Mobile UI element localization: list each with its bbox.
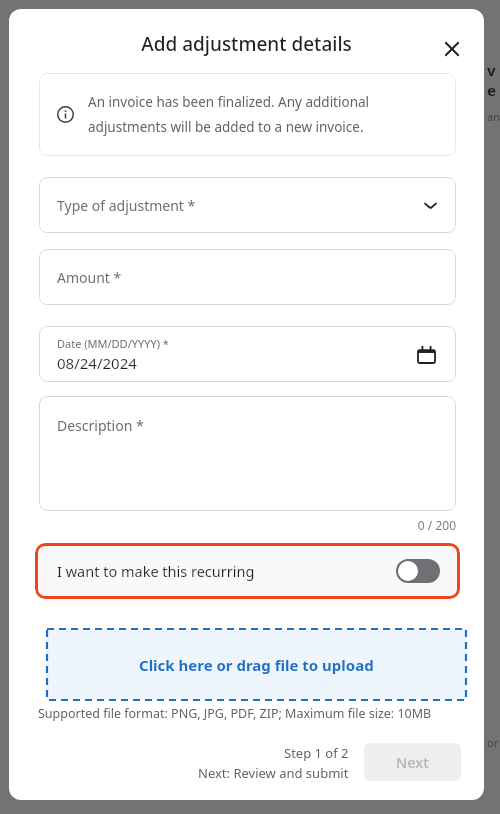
- button[interactable]: Description *: [39, 396, 456, 511]
- button[interactable]: Click here or drag file to upload: [47, 629, 466, 700]
- button[interactable]: Amount *: [39, 249, 456, 305]
- staticText: 0 / 200: [39, 517, 456, 533]
- staticText: Date (MM/DD/YYYY) *: [57, 336, 169, 351]
- button[interactable]: Date (MM/DD/YYYY) *: [39, 326, 456, 382]
- staticText: Add adjustment details: [9, 31, 484, 57]
- staticText: Next: Review and submit: [198, 764, 349, 782]
- staticText: Type of adjustment *: [57, 196, 196, 215]
- staticText: Amount *: [57, 268, 122, 287]
- staticText: Description *: [57, 416, 144, 435]
- staticText: Click here or drag file to upload: [139, 655, 374, 675]
- button[interactable]: Pick date: [414, 342, 438, 366]
- staticText: Supported file format: PNG, JPG, PDF, ZI…: [38, 705, 432, 722]
- button[interactable]: Close: [433, 30, 471, 68]
- staticText: I want to make this recurring: [57, 561, 255, 581]
- staticText: Step 1 of 2: [284, 744, 349, 762]
- staticText: ve: [487, 60, 500, 100]
- button[interactable]: Make recurring toggle: [396, 559, 440, 583]
- staticText: an: [487, 109, 500, 124]
- staticText: 08/24/2024: [57, 353, 137, 373]
- staticText: or: [487, 735, 499, 750]
- staticText: Next: [396, 752, 429, 772]
- staticText: An invoice has been finalized. Any addit…: [88, 93, 434, 136]
- button[interactable]: Type of adjustment *: [39, 177, 456, 233]
- button[interactable]: I want to make this recurring: [35, 543, 460, 599]
- button[interactable]: Next: [364, 743, 461, 781]
